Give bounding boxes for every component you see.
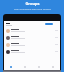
button[interactable]	[4, 48, 60, 55]
staticText: Groups	[25, 1, 40, 6]
staticText: Stay connected with your groups	[14, 7, 51, 10]
button[interactable]	[4, 34, 60, 41]
button[interactable]: Tab 4	[46, 64, 60, 70]
button[interactable]	[4, 41, 60, 48]
button[interactable]: New group	[45, 23, 53, 25]
button[interactable]	[4, 27, 60, 34]
button[interactable]: Tab 1	[4, 64, 18, 70]
button[interactable]: Tab 2	[18, 64, 32, 70]
button[interactable]: Tab 3	[32, 64, 46, 70]
